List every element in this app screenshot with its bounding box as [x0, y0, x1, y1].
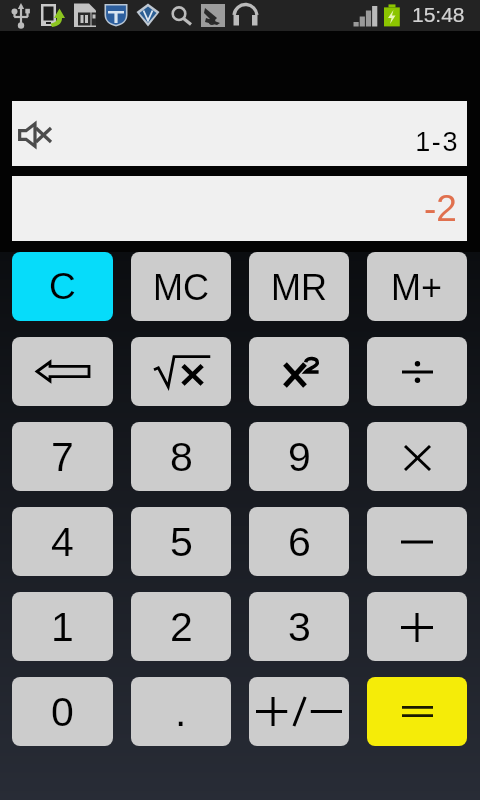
- staticText: 0: [51, 689, 74, 735]
- staticText: C: [49, 266, 76, 307]
- button[interactable]: -2: [12, 176, 467, 241]
- staticText: MC: [153, 267, 209, 307]
- button[interactable]: Sound off: [12, 101, 467, 166]
- staticText: MR: [271, 267, 327, 307]
- staticText: -2: [424, 188, 457, 229]
- button[interactable]: Plus minus: [249, 677, 349, 746]
- staticText: 2: [170, 604, 193, 650]
- staticText: M+: [391, 267, 443, 307]
- staticText: 6: [288, 519, 311, 565]
- staticText: 4: [51, 519, 74, 565]
- button[interactable]: 0: [12, 677, 113, 746]
- staticText: 8: [170, 434, 193, 480]
- staticText: 15:48: [412, 3, 465, 26]
- button[interactable]: Square root: [131, 337, 231, 406]
- button[interactable]: Multiply: [367, 422, 467, 491]
- staticText: 3: [288, 604, 311, 650]
- button[interactable]: 9: [249, 422, 349, 491]
- staticText: 9: [288, 434, 311, 480]
- staticText: .: [175, 689, 187, 735]
- button[interactable]: 8: [131, 422, 231, 491]
- button[interactable]: .: [131, 677, 231, 746]
- button[interactable]: M+: [367, 252, 467, 321]
- button[interactable]: C: [12, 252, 113, 321]
- button[interactable]: Square: [249, 337, 349, 406]
- button[interactable]: 1: [12, 592, 113, 661]
- button[interactable]: Equals: [367, 677, 467, 746]
- button[interactable]: 5: [131, 507, 231, 576]
- button[interactable]: 7: [12, 422, 113, 491]
- button[interactable]: Plus: [367, 592, 467, 661]
- staticText: 1: [51, 604, 74, 650]
- staticText: 1-3: [12, 127, 459, 157]
- other: Sound off: [19, 123, 51, 147]
- button[interactable]: MC: [131, 252, 231, 321]
- button[interactable]: 6: [249, 507, 349, 576]
- button[interactable]: Minus: [367, 507, 467, 576]
- button[interactable]: Divide: [367, 337, 467, 406]
- button[interactable]: MR: [249, 252, 349, 321]
- button[interactable]: 4: [12, 507, 113, 576]
- staticText: 7: [51, 434, 74, 480]
- button[interactable]: 3: [249, 592, 349, 661]
- button[interactable]: 2: [131, 592, 231, 661]
- button[interactable]: Backspace: [12, 337, 113, 406]
- staticText: 5: [170, 519, 193, 565]
